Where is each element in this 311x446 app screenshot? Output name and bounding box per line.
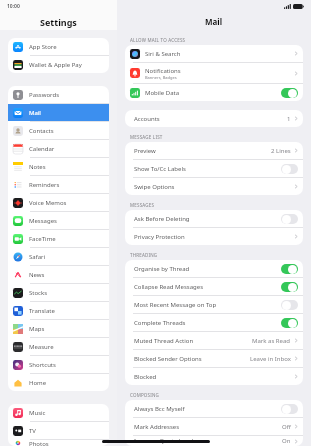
staticText: ALLOW MAIL TO ACCESS [130, 37, 186, 43]
button[interactable]: Photos [8, 440, 109, 446]
staticText: Swipe Options [134, 183, 175, 191]
button[interactable]: Stocks [8, 284, 109, 301]
staticText: COMPOSING [130, 392, 160, 398]
staticText: FaceTime [29, 235, 56, 243]
button[interactable]: Contacts [8, 122, 109, 139]
button[interactable]: On [281, 88, 298, 98]
button[interactable]: On [281, 318, 298, 328]
staticText: Contacts [29, 127, 54, 135]
button[interactable]: Most Recent Message on Top [125, 296, 303, 313]
staticText: Home [29, 379, 47, 387]
button[interactable]: Off [281, 404, 298, 414]
button[interactable]: Blocked Sender Options [125, 350, 303, 367]
button[interactable]: Always Bcc Myself [125, 400, 303, 417]
staticText: On [282, 437, 291, 445]
button[interactable]: Swipe Options [125, 178, 303, 195]
staticText: 2 Lines [271, 147, 291, 155]
staticText: Shortcuts [29, 361, 56, 369]
button[interactable]: Calendar [8, 140, 109, 157]
staticText: Accounts [134, 115, 160, 123]
button[interactable]: Privacy Protection [125, 228, 303, 245]
button[interactable]: Maps [8, 320, 109, 337]
button[interactable]: Ask Before Deleting [125, 210, 303, 227]
button[interactable]: Mobile Data [125, 84, 303, 101]
button[interactable]: Home [8, 374, 109, 391]
staticText: Messages [29, 217, 57, 225]
button[interactable]: Siri & Search [125, 45, 303, 62]
button[interactable]: Translate [8, 302, 109, 319]
staticText: Ask Before Deleting [134, 215, 190, 223]
staticText: MESSAGES [130, 202, 155, 208]
staticText: Maps [29, 325, 45, 333]
button[interactable]: Notifications [125, 63, 303, 83]
button[interactable]: Off [281, 214, 298, 224]
button[interactable]: Collapse Read Messages [125, 278, 303, 295]
staticText: Increase Quote Level [134, 437, 194, 445]
staticText: App Store [29, 43, 57, 51]
button[interactable]: Muted Thread Action [125, 332, 303, 349]
button[interactable]: On [281, 282, 298, 292]
staticText: Reminders [29, 181, 60, 189]
button[interactable]: Mail [8, 104, 109, 121]
button[interactable]: Safari [8, 248, 109, 265]
staticText: Privacy Protection [134, 233, 185, 241]
button[interactable]: Preview [125, 142, 303, 159]
staticText: Wallet & Apple Pay [29, 61, 82, 69]
button[interactable]: On [281, 264, 298, 274]
button[interactable]: News [8, 266, 109, 283]
button[interactable]: Off [281, 164, 298, 174]
staticText: Blocked [134, 373, 157, 381]
staticText: Translate [29, 307, 55, 315]
staticText: TV [29, 427, 36, 435]
button[interactable]: Voice Memos [8, 194, 109, 211]
button[interactable]: Increase Quote Level [125, 436, 303, 446]
staticText: Leave in Inbox [250, 355, 291, 363]
staticText: Calendar [29, 145, 55, 153]
staticText: Voice Memos [29, 199, 67, 207]
staticText: THREADING [130, 252, 158, 258]
button[interactable]: Messages [8, 212, 109, 229]
staticText: Stocks [29, 289, 48, 297]
staticText: Banners, Badges [145, 75, 177, 80]
staticText: Notifications [145, 67, 181, 75]
button[interactable]: Music [8, 404, 109, 421]
button[interactable]: Wallet & Apple Pay [8, 56, 109, 73]
staticText: 10:00 [7, 3, 20, 10]
button[interactable]: Shortcuts [8, 356, 109, 373]
button[interactable]: Mark Addresses [125, 418, 303, 435]
staticText: Always Bcc Myself [134, 405, 185, 413]
staticText: Siri & Search [145, 50, 181, 58]
staticText: MESSAGE LIST [130, 134, 163, 140]
staticText: Notes [29, 163, 46, 171]
button[interactable]: Blocked [125, 368, 303, 385]
staticText: Mobile Data [145, 89, 180, 97]
staticText: Off [282, 423, 291, 431]
staticText: News [29, 271, 45, 279]
staticText: Muted Thread Action [134, 337, 194, 345]
button[interactable]: Reminders [8, 176, 109, 193]
button[interactable]: Complete Threads [125, 314, 303, 331]
button[interactable]: TV [8, 422, 109, 439]
button[interactable]: FaceTime [8, 230, 109, 247]
staticText: Mail [29, 109, 41, 117]
button[interactable]: Measure [8, 338, 109, 355]
button[interactable]: Accounts [125, 110, 303, 127]
staticText: 1 [287, 115, 291, 123]
staticText: Music [29, 409, 46, 417]
button[interactable]: Passwords [8, 86, 109, 103]
button[interactable]: Organise by Thread [125, 260, 303, 277]
staticText: Measure [29, 343, 54, 351]
staticText: Safari [29, 253, 46, 261]
staticText: Preview [134, 147, 156, 155]
button[interactable]: App Store [8, 38, 109, 55]
button[interactable]: Show To/Cc Labels [125, 160, 303, 177]
staticText: Settings [40, 16, 77, 28]
button[interactable]: Notes [8, 158, 109, 175]
staticText: Organise by Thread [134, 265, 190, 273]
staticText: Photos [29, 440, 49, 446]
staticText: Most Recent Message on Top [134, 301, 217, 309]
staticText: Blocked Sender Options [134, 355, 202, 363]
button[interactable]: Off [281, 300, 298, 310]
staticText: Mark Addresses [134, 423, 180, 431]
staticText: Mark as Read [252, 337, 291, 345]
